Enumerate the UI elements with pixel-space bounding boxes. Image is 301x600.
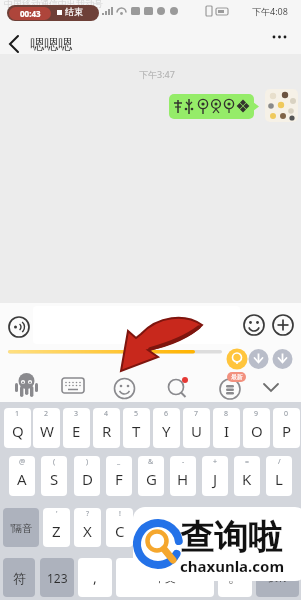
staticText: A: [17, 469, 27, 489]
button[interactable]: 0: [273, 408, 300, 448]
staticText: 7: [194, 409, 199, 419]
button[interactable]: [13, 373, 40, 399]
button[interactable]: 4: [93, 408, 120, 448]
staticText: 4: [104, 409, 109, 419]
staticText: B: [179, 521, 189, 541]
button[interactable]: ;: [170, 508, 197, 547]
staticText: ?: [86, 509, 90, 519]
staticText: =: [245, 457, 250, 467]
button[interactable]: …: [234, 508, 261, 547]
staticText: R: [102, 421, 112, 441]
staticText: 结束: [65, 6, 83, 17]
button[interactable]: [33, 306, 240, 344]
staticText: 中文: [154, 571, 176, 585]
button[interactable]: [61, 376, 85, 396]
staticText: P: [282, 421, 292, 441]
staticText: Z: [52, 521, 61, 541]
staticText: @: [19, 457, 26, 467]
button[interactable]: 3: [63, 408, 90, 448]
button[interactable]: 2: [33, 408, 60, 448]
button[interactable]: [113, 377, 136, 400]
button[interactable]: 5: [123, 408, 150, 448]
button[interactable]: [166, 377, 190, 400]
staticText: O: [251, 421, 263, 441]
button[interactable]: 9: [243, 408, 270, 448]
staticText: 。: [228, 569, 242, 587]
button[interactable]: ): [74, 456, 100, 496]
staticText: 最新: [231, 373, 243, 381]
button[interactable]: ?: [74, 508, 101, 547]
staticText: +: [213, 457, 218, 467]
staticText: 3: [74, 409, 79, 419]
staticText: X: [83, 521, 92, 541]
button[interactable]: :: [138, 508, 165, 547]
button[interactable]: 符: [3, 558, 35, 597]
staticText: ,: [93, 568, 97, 587]
button[interactable]: [260, 377, 282, 397]
staticText: chaxunla.com: [180, 556, 285, 576]
staticText: S: [50, 469, 59, 489]
staticText: ': [56, 509, 58, 519]
button[interactable]: 123: [40, 558, 74, 597]
staticText: 2: [44, 409, 49, 419]
button[interactable]: /: [266, 456, 292, 496]
button[interactable]: &: [138, 456, 164, 496]
button[interactable]: 嗯嗯嗯: [30, 36, 72, 54]
button[interactable]: (: [41, 456, 67, 496]
staticText: U: [191, 421, 202, 441]
staticText: Y: [162, 421, 171, 441]
button[interactable]: '隔音: [3, 508, 39, 547]
staticText: 6: [164, 409, 169, 419]
staticText: 符: [13, 570, 26, 586]
button[interactable]: 中文: [116, 558, 214, 597]
button[interactable]: [265, 89, 298, 122]
button[interactable]: [264, 508, 299, 547]
button[interactable]: [272, 314, 294, 336]
button[interactable]: !: [106, 508, 133, 547]
button[interactable]: 。: [218, 558, 252, 597]
button[interactable]: [243, 314, 265, 336]
staticText: M: [241, 521, 255, 541]
button[interactable]: +: [202, 456, 228, 496]
staticText: H: [177, 469, 189, 489]
staticText: E: [72, 421, 81, 441]
button[interactable]: 7: [183, 408, 210, 448]
button[interactable]: [7, 5, 99, 21]
staticText: W: [40, 421, 54, 441]
staticText: 中国移动通信中出我动号: [4, 0, 103, 9]
button[interactable]: [218, 376, 250, 400]
staticText: F: [115, 469, 123, 489]
staticText: !: [119, 509, 121, 519]
staticText: L: [275, 469, 283, 489]
staticText: Q: [12, 421, 24, 441]
button[interactable]: 1: [4, 408, 31, 448]
staticText: N: [210, 521, 222, 541]
staticText: D: [82, 469, 93, 489]
staticText: 下午3:47: [139, 68, 175, 80]
button[interactable]: ': [43, 508, 70, 547]
staticText: 0: [284, 409, 289, 419]
staticText: 下午4:08: [252, 5, 288, 17]
staticText: _: [117, 457, 121, 467]
staticText: '隔音: [10, 521, 33, 535]
button[interactable]: -: [170, 456, 196, 496]
staticText: /: [278, 457, 281, 467]
button[interactable]: 8: [213, 408, 240, 448]
button[interactable]: =: [234, 456, 260, 496]
button[interactable]: @: [9, 456, 35, 496]
button[interactable]: [2, 32, 26, 56]
staticText: G: [146, 469, 157, 489]
staticText: T: [132, 421, 141, 441]
button[interactable]: 换行: [256, 558, 299, 597]
staticText: C: [115, 521, 125, 541]
button[interactable]: [7, 315, 31, 339]
button[interactable]: 6: [153, 408, 180, 448]
button[interactable]: ,: [78, 558, 112, 597]
button[interactable]: ~: [202, 508, 229, 547]
staticText: -: [182, 457, 185, 467]
button[interactable]: _: [106, 456, 132, 496]
button[interactable]: [264, 26, 294, 48]
